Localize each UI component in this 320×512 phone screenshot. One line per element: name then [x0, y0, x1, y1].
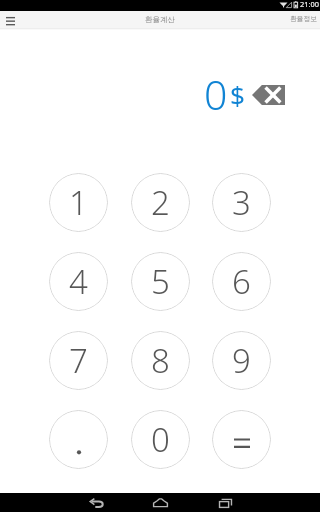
staticText: 4 — [69, 259, 88, 304]
button[interactable]: 7 — [49, 331, 108, 390]
button[interactable]: 환율정보 — [290, 14, 318, 23]
staticText: 2 — [151, 180, 170, 225]
button[interactable]: Home — [140, 493, 180, 512]
staticText: 1 — [69, 180, 88, 225]
staticText: $ — [230, 77, 245, 112]
staticText: 환율계산 — [145, 15, 175, 24]
staticText: 3 — [232, 180, 251, 225]
button[interactable]: 0 — [131, 410, 190, 469]
button[interactable]: 2 — [131, 173, 190, 232]
button[interactable]: Recents — [205, 493, 245, 512]
button[interactable]: 1 — [49, 173, 108, 232]
staticText: 7 — [69, 338, 88, 383]
button[interactable]: 9 — [212, 331, 271, 390]
staticText: 8 — [151, 338, 170, 383]
staticText: 환율정보 — [290, 14, 318, 23]
button[interactable]: Menu — [3, 14, 17, 28]
staticText: 6 — [232, 259, 251, 304]
button[interactable]: Back — [76, 493, 116, 512]
button[interactable]: 8 — [131, 331, 190, 390]
staticText: 21:00 — [300, 0, 319, 9]
button[interactable] — [212, 410, 271, 469]
staticText: 5 — [151, 259, 170, 304]
button[interactable]: 6 — [212, 252, 271, 311]
button[interactable]: 4 — [49, 252, 108, 311]
button[interactable]: 5 — [131, 252, 190, 311]
button[interactable]: 3 — [212, 173, 271, 232]
staticText: 0 — [204, 66, 228, 122]
button[interactable] — [49, 410, 108, 469]
staticText: 0 — [151, 417, 170, 462]
staticText: 9 — [232, 338, 251, 383]
button[interactable]: Backspace — [252, 85, 285, 105]
